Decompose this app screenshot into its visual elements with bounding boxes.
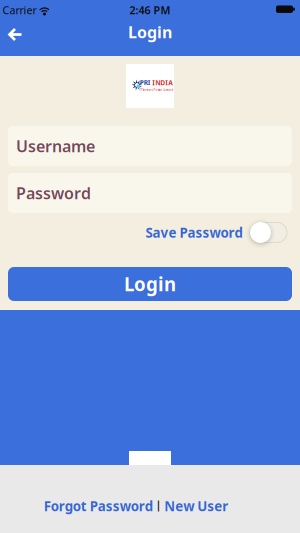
- staticText: INDIA: [152, 78, 173, 87]
- staticText: Login: [128, 21, 172, 43]
- staticText: Username: [16, 135, 95, 157]
- button[interactable]: Login: [8, 267, 292, 301]
- button[interactable]: New User: [164, 497, 228, 515]
- button[interactable]: [0, 19, 30, 49]
- button[interactable]: Password: [8, 173, 292, 213]
- button[interactable]: [249, 221, 287, 243]
- staticText: Password: [16, 182, 91, 204]
- staticText: PRI: [140, 78, 151, 87]
- button[interactable]: Username: [8, 126, 292, 166]
- staticText: Save Password: [145, 224, 242, 241]
- staticText: 2:46 PM: [129, 3, 170, 17]
- staticText: Carrier: [2, 3, 36, 17]
- staticText: IT Services Private Limited: [139, 88, 173, 92]
- staticText: Forgot Password: [44, 497, 153, 515]
- staticText: New User: [164, 497, 228, 515]
- staticText: Login: [124, 272, 176, 296]
- button[interactable]: Forgot Password: [44, 497, 153, 515]
